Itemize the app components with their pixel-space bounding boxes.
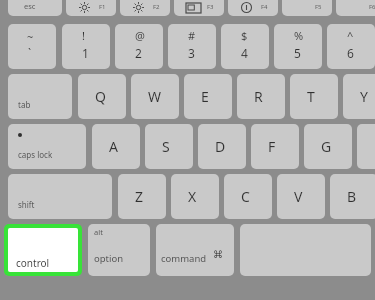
- button[interactable]: Mission control F3: [174, 0, 224, 16]
- staticText: Z: [135, 187, 144, 206]
- button[interactable]: Key Q: [78, 74, 126, 119]
- button[interactable]: Space bar: [240, 224, 371, 276]
- staticText: tab: [18, 99, 31, 110]
- button[interactable]: Tilde key: [8, 24, 56, 69]
- button[interactable]: Do not disturb F4: [228, 0, 278, 16]
- staticText: ⌘: [213, 249, 223, 261]
- button[interactable]: Brightness down F1: [66, 0, 116, 16]
- staticText: S: [162, 137, 170, 156]
- staticText: V: [294, 187, 303, 206]
- button[interactable]: F6: [336, 0, 375, 16]
- button[interactable]: Tab key: [8, 74, 72, 119]
- button[interactable]: Key E: [184, 74, 232, 119]
- staticText: caps lock: [18, 149, 53, 160]
- button[interactable]: Key V: [277, 174, 325, 219]
- button[interactable]: Key D: [198, 124, 246, 169]
- staticText: !: [82, 28, 85, 43]
- staticText: control: [16, 256, 50, 270]
- staticText: ~: [27, 29, 34, 44]
- staticText: F4: [261, 3, 268, 11]
- staticText: shift: [18, 199, 35, 210]
- staticText: 1: [82, 45, 89, 61]
- button[interactable]: Option key: [88, 224, 150, 276]
- staticText: Y: [360, 87, 368, 106]
- staticText: Q: [95, 87, 106, 106]
- staticText: R: [254, 87, 263, 106]
- button[interactable]: Key A: [92, 124, 140, 169]
- button[interactable]: Key W: [131, 74, 179, 119]
- button[interactable]: Escape key: [8, 0, 62, 16]
- staticText: option: [94, 252, 124, 265]
- button[interactable]: Key X: [171, 174, 219, 219]
- button[interactable]: Control key (highlighted): [4, 224, 82, 276]
- staticText: $: [241, 28, 248, 43]
- button[interactable]: Command key: [156, 224, 234, 276]
- staticText: 5: [294, 45, 301, 61]
- button[interactable]: Key 1: [62, 24, 110, 69]
- button[interactable]: Key Y: [343, 74, 375, 119]
- staticText: #: [188, 28, 196, 43]
- staticText: D: [215, 137, 226, 156]
- button[interactable]: Key H: [357, 124, 375, 169]
- staticText: G: [321, 137, 332, 156]
- staticText: F1: [99, 3, 106, 11]
- button[interactable]: Key 4: [221, 24, 269, 69]
- button[interactable]: Brightness up F2: [120, 0, 170, 16]
- button[interactable]: Key C: [224, 174, 272, 219]
- staticText: F: [268, 137, 276, 156]
- staticText: 6: [347, 45, 354, 61]
- button[interactable]: Key T: [290, 74, 338, 119]
- staticText: 4: [241, 45, 248, 61]
- staticText: @: [135, 28, 145, 43]
- staticText: A: [109, 137, 118, 156]
- button[interactable]: Key Z: [118, 174, 166, 219]
- button[interactable]: Key R: [237, 74, 285, 119]
- staticText: alt: [94, 227, 103, 237]
- staticText: ^: [347, 28, 354, 43]
- staticText: 2: [135, 45, 142, 61]
- staticText: B: [347, 187, 357, 206]
- button[interactable]: Key G: [304, 124, 352, 169]
- button[interactable]: Key 3: [168, 24, 216, 69]
- staticText: W: [148, 87, 162, 106]
- staticText: F3: [207, 3, 214, 11]
- button[interactable]: Key B: [330, 174, 375, 219]
- button[interactable]: Caps lock key: [8, 124, 86, 169]
- staticText: F5: [315, 3, 322, 11]
- staticText: F2: [153, 3, 160, 11]
- staticText: command: [161, 252, 207, 265]
- staticText: esc: [24, 1, 36, 11]
- staticText: F6: [369, 3, 375, 11]
- button[interactable]: Key S: [145, 124, 193, 169]
- button[interactable]: Shift key: [8, 174, 112, 219]
- button[interactable]: Key 2: [115, 24, 163, 69]
- button[interactable]: F5: [282, 0, 332, 16]
- staticText: T: [307, 87, 315, 106]
- button[interactable]: Key F: [251, 124, 299, 169]
- staticText: `: [28, 45, 32, 60]
- staticText: X: [188, 187, 197, 206]
- staticText: E: [201, 87, 209, 106]
- staticText: C: [241, 187, 250, 206]
- staticText: %: [294, 28, 304, 43]
- button[interactable]: Key 5: [274, 24, 322, 69]
- button[interactable]: Key 6: [327, 24, 375, 69]
- staticText: 3: [188, 45, 195, 61]
